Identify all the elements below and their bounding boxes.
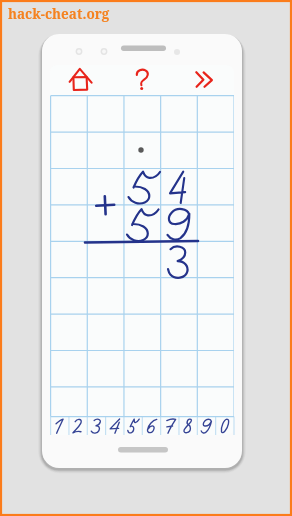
- button[interactable]: Help: [126, 64, 158, 92]
- button[interactable]: Digit 4: [105, 416, 123, 440]
- button[interactable]: Digit 5: [124, 416, 142, 440]
- button[interactable]: Digit 3: [87, 416, 105, 440]
- button[interactable]: Digit 8: [179, 416, 197, 440]
- button[interactable]: Digit 9: [197, 416, 215, 440]
- button[interactable]: Digit 2: [68, 416, 86, 440]
- button[interactable]: Digit 0: [216, 416, 234, 440]
- button[interactable]: Digit 6: [142, 416, 160, 440]
- button[interactable]: Home: [62, 64, 102, 92]
- staticText: hack-cheat.org: [8, 5, 110, 23]
- button[interactable]: Next: [188, 64, 224, 92]
- button[interactable]: Digit 7: [160, 416, 178, 440]
- button[interactable]: Digit 1: [50, 416, 68, 440]
